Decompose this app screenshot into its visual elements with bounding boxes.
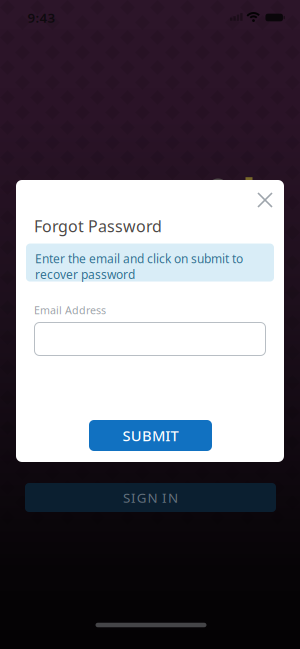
staticText: Forgot Password [34, 215, 162, 237]
staticText: SIGN IN [123, 489, 178, 506]
button[interactable]: SUBMIT [89, 420, 212, 451]
staticText: Email Address [34, 303, 106, 317]
button[interactable]: Close [250, 185, 280, 215]
staticText: SUBMIT [122, 426, 178, 445]
button[interactable]: SIGN IN [25, 483, 276, 512]
staticText: Enter the email and click on submit to r… [35, 251, 243, 282]
staticText: 9:43 [27, 9, 55, 26]
